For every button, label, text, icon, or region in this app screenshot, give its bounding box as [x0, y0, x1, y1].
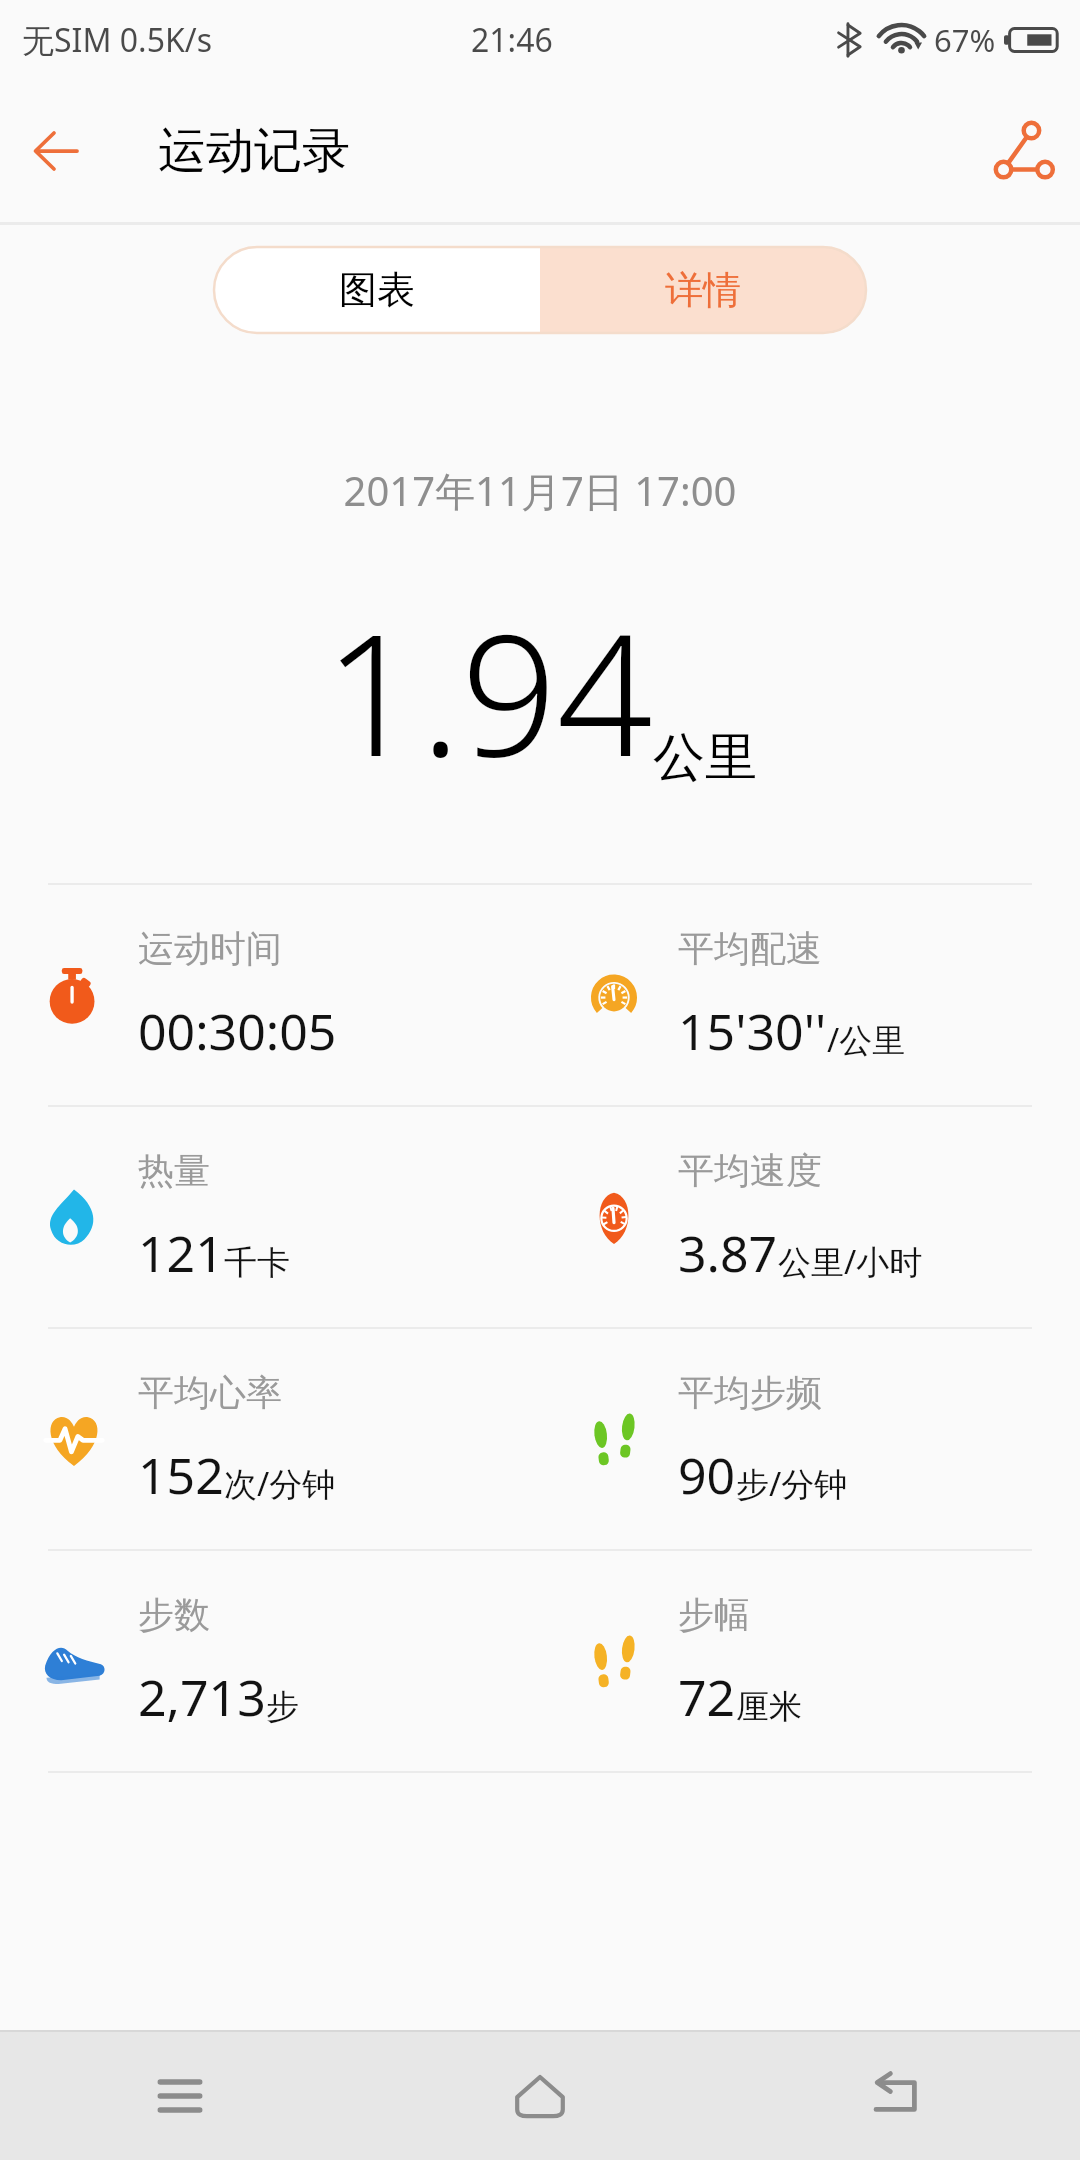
staticText: 运动时间	[138, 926, 282, 971]
staticText: 步/分钟	[736, 1461, 848, 1506]
staticText: 15'30''	[678, 997, 827, 1065]
staticText: 21:46	[471, 18, 553, 62]
staticText: 千卡	[224, 1242, 290, 1284]
staticText: 2017年11月7日 17:00	[0, 463, 1080, 518]
staticText: 00:30:05	[138, 997, 337, 1065]
button[interactable]: 图表	[214, 247, 540, 333]
button[interactable]: 平均配速	[540, 885, 1080, 1105]
button[interactable]: 详情	[540, 247, 866, 333]
button[interactable]: 运动时间	[0, 885, 540, 1105]
button[interactable]: Share	[968, 95, 1080, 207]
staticText: 详情	[665, 266, 741, 314]
button[interactable]: 平均速度	[540, 1107, 1080, 1327]
staticText: 热量	[138, 1148, 210, 1193]
staticText: 1.94	[324, 576, 653, 805]
staticText: /公里	[827, 1017, 906, 1062]
staticText: 平均速度	[678, 1148, 822, 1193]
staticText: 72	[678, 1663, 736, 1731]
button[interactable]: Back	[720, 2032, 1080, 2160]
staticText: 90	[678, 1441, 736, 1509]
button[interactable]: Menu	[0, 2032, 360, 2160]
staticText: 运动记录	[158, 121, 350, 181]
button[interactable]: 步幅	[540, 1551, 1080, 1771]
staticText: 2,713	[138, 1663, 266, 1731]
staticText: 121	[138, 1219, 224, 1287]
staticText: 步幅	[678, 1592, 750, 1637]
button[interactable]: 平均步频	[540, 1329, 1080, 1549]
staticText: 公里	[653, 725, 757, 791]
staticText: 67%	[934, 19, 996, 61]
staticText: 次/分钟	[224, 1461, 336, 1506]
staticText: 平均配速	[678, 926, 822, 971]
staticText: 公里/小时	[778, 1239, 923, 1284]
staticText: 厘米	[736, 1686, 802, 1728]
staticText: 平均心率	[138, 1370, 282, 1415]
staticText: 图表	[339, 266, 415, 314]
staticText: 步数	[138, 1592, 210, 1637]
staticText: 152	[138, 1441, 224, 1509]
staticText: 平均步频	[678, 1370, 822, 1415]
button[interactable]: 步数	[0, 1551, 540, 1771]
button[interactable]: 热量	[0, 1107, 540, 1327]
button[interactable]: 平均心率	[0, 1329, 540, 1549]
staticText: 步	[266, 1686, 299, 1728]
button[interactable]: Back	[0, 95, 112, 207]
staticText: 3.87	[678, 1219, 778, 1287]
staticText: 无SIM 0.5K/s	[22, 18, 212, 62]
button[interactable]: Home	[360, 2032, 720, 2160]
